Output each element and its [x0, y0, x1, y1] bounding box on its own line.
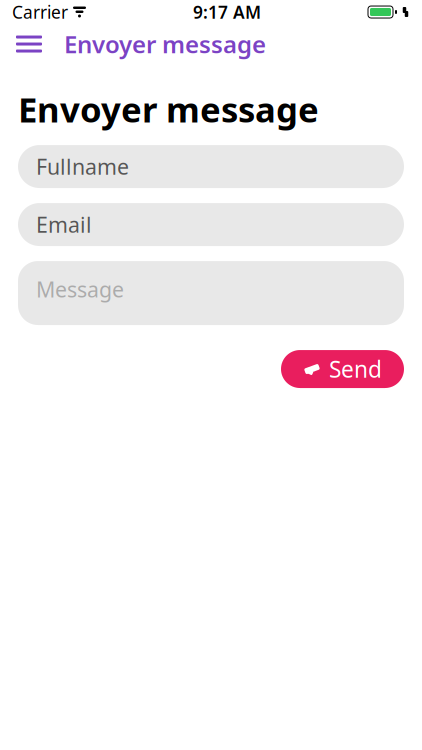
staticText: Carrier [12, 0, 68, 23]
button[interactable]: Message [18, 261, 404, 325]
staticText: Message [36, 275, 124, 303]
staticText: 9:17 AM [193, 0, 261, 23]
button[interactable]: Email [18, 203, 404, 246]
staticText: Email [36, 210, 92, 239]
button[interactable]: Send [281, 350, 404, 388]
button[interactable]: Envoyer message [44, 28, 266, 60]
button[interactable]: Menu [14, 29, 44, 59]
staticText: Envoyer message [64, 28, 266, 60]
staticText: Fullname [36, 152, 129, 181]
staticText: Send [329, 354, 382, 384]
staticText: Envoyer message [18, 86, 319, 132]
button[interactable]: Fullname [18, 145, 404, 188]
